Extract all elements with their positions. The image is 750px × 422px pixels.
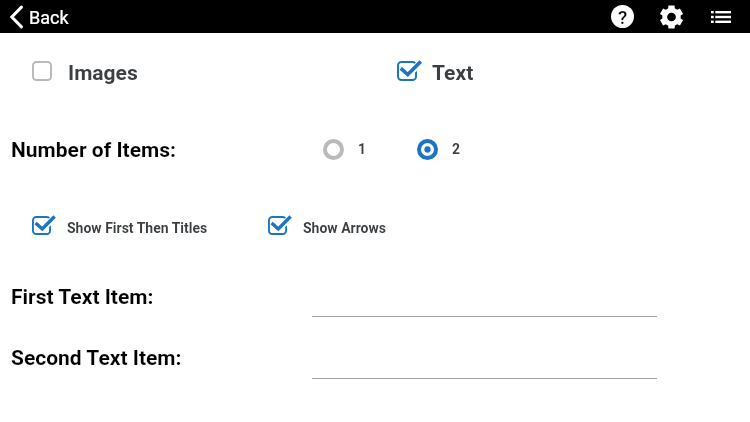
staticText: ? — [618, 6, 628, 28]
button[interactable]: Text input — [312, 350, 657, 379]
button[interactable]: 2 — [417, 139, 461, 160]
button[interactable]: Menu — [704, 0, 737, 33]
staticText: Show First Then Titles — [67, 220, 208, 236]
staticText: Back — [29, 7, 69, 28]
button[interactable]: Text input — [312, 288, 657, 317]
staticText: Images — [68, 61, 138, 86]
button[interactable]: Help — [606, 0, 639, 33]
staticText: 2 — [452, 141, 461, 157]
button[interactable]: Text — [397, 61, 474, 86]
staticText: First Text Item: — [11, 285, 154, 310]
staticText: 1 — [358, 141, 367, 157]
staticText: Number of Items: — [11, 138, 176, 163]
button[interactable]: Back — [10, 6, 69, 28]
staticText: Second Text Item: — [11, 346, 182, 371]
staticText: Show Arrows — [303, 220, 386, 236]
button[interactable]: Show Arrows — [268, 216, 386, 235]
button[interactable]: Show First Then Titles — [32, 216, 208, 235]
staticText: Text — [432, 61, 474, 86]
button[interactable]: Images — [32, 61, 138, 86]
button[interactable]: 1 — [323, 139, 367, 160]
button[interactable]: Settings — [655, 0, 688, 33]
